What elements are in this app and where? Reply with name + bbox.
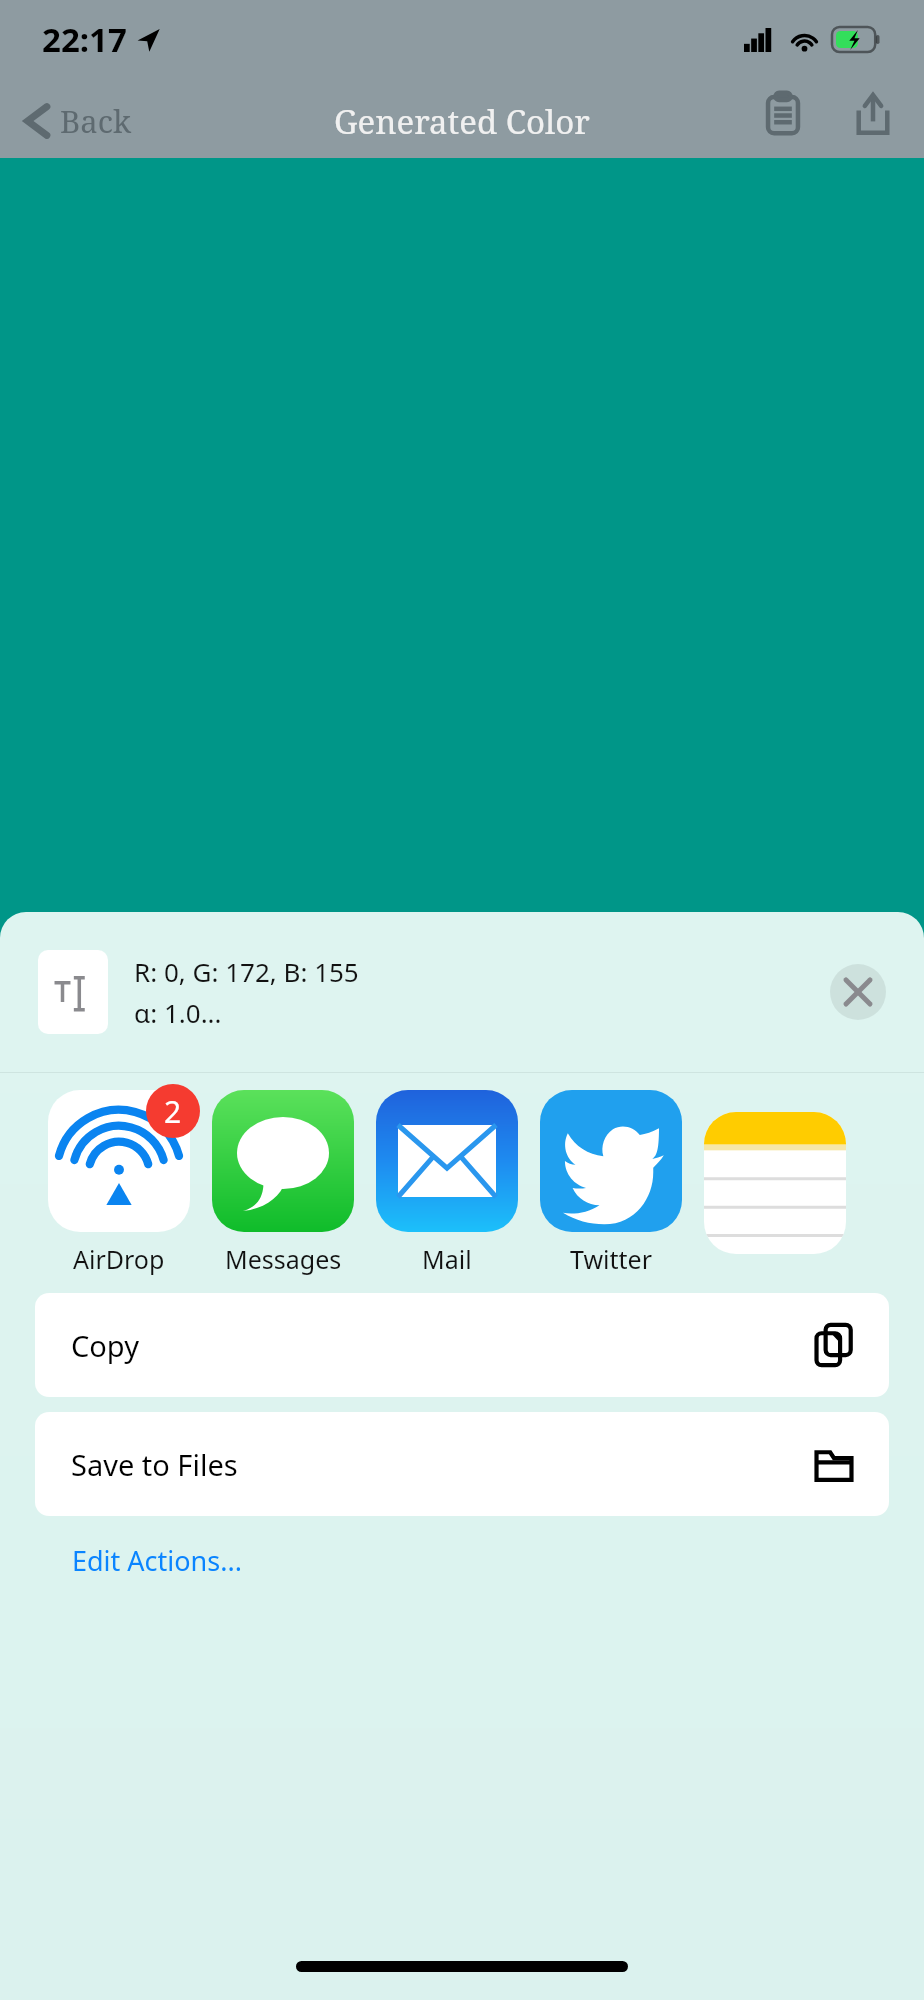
staticText: Save to Files xyxy=(71,1445,238,1484)
staticText: Messages xyxy=(225,1242,342,1276)
staticText: R: 0, G: 172, B: 155 xyxy=(134,954,359,989)
button[interactable]: Paste from clipboard xyxy=(754,80,812,146)
button[interactable]: Close xyxy=(830,964,886,1020)
staticText: AirDrop xyxy=(73,1242,165,1276)
button[interactable]: Messages xyxy=(212,1090,354,1276)
staticText: Back xyxy=(60,100,132,142)
button[interactable]: Copy xyxy=(35,1293,889,1397)
staticText: Twitter xyxy=(570,1242,652,1276)
button[interactable]: Back xyxy=(18,94,138,148)
staticText: α: 1.0... xyxy=(134,995,222,1030)
button[interactable]: 2 xyxy=(48,1090,190,1276)
staticText: Copy xyxy=(71,1326,139,1365)
button[interactable]: Save to Files xyxy=(35,1412,889,1516)
button[interactable]: Twitter xyxy=(540,1090,682,1276)
staticText: 2 xyxy=(164,1091,182,1132)
button[interactable]: Edit Actions... xyxy=(70,1538,244,1583)
staticText: Generated Color xyxy=(334,99,590,144)
staticText: Edit Actions... xyxy=(72,1542,242,1579)
button[interactable]: Mail xyxy=(376,1090,518,1276)
staticText: Mail xyxy=(422,1242,472,1276)
staticText: 22:17 xyxy=(42,17,127,62)
button[interactable]: Share xyxy=(844,80,902,146)
